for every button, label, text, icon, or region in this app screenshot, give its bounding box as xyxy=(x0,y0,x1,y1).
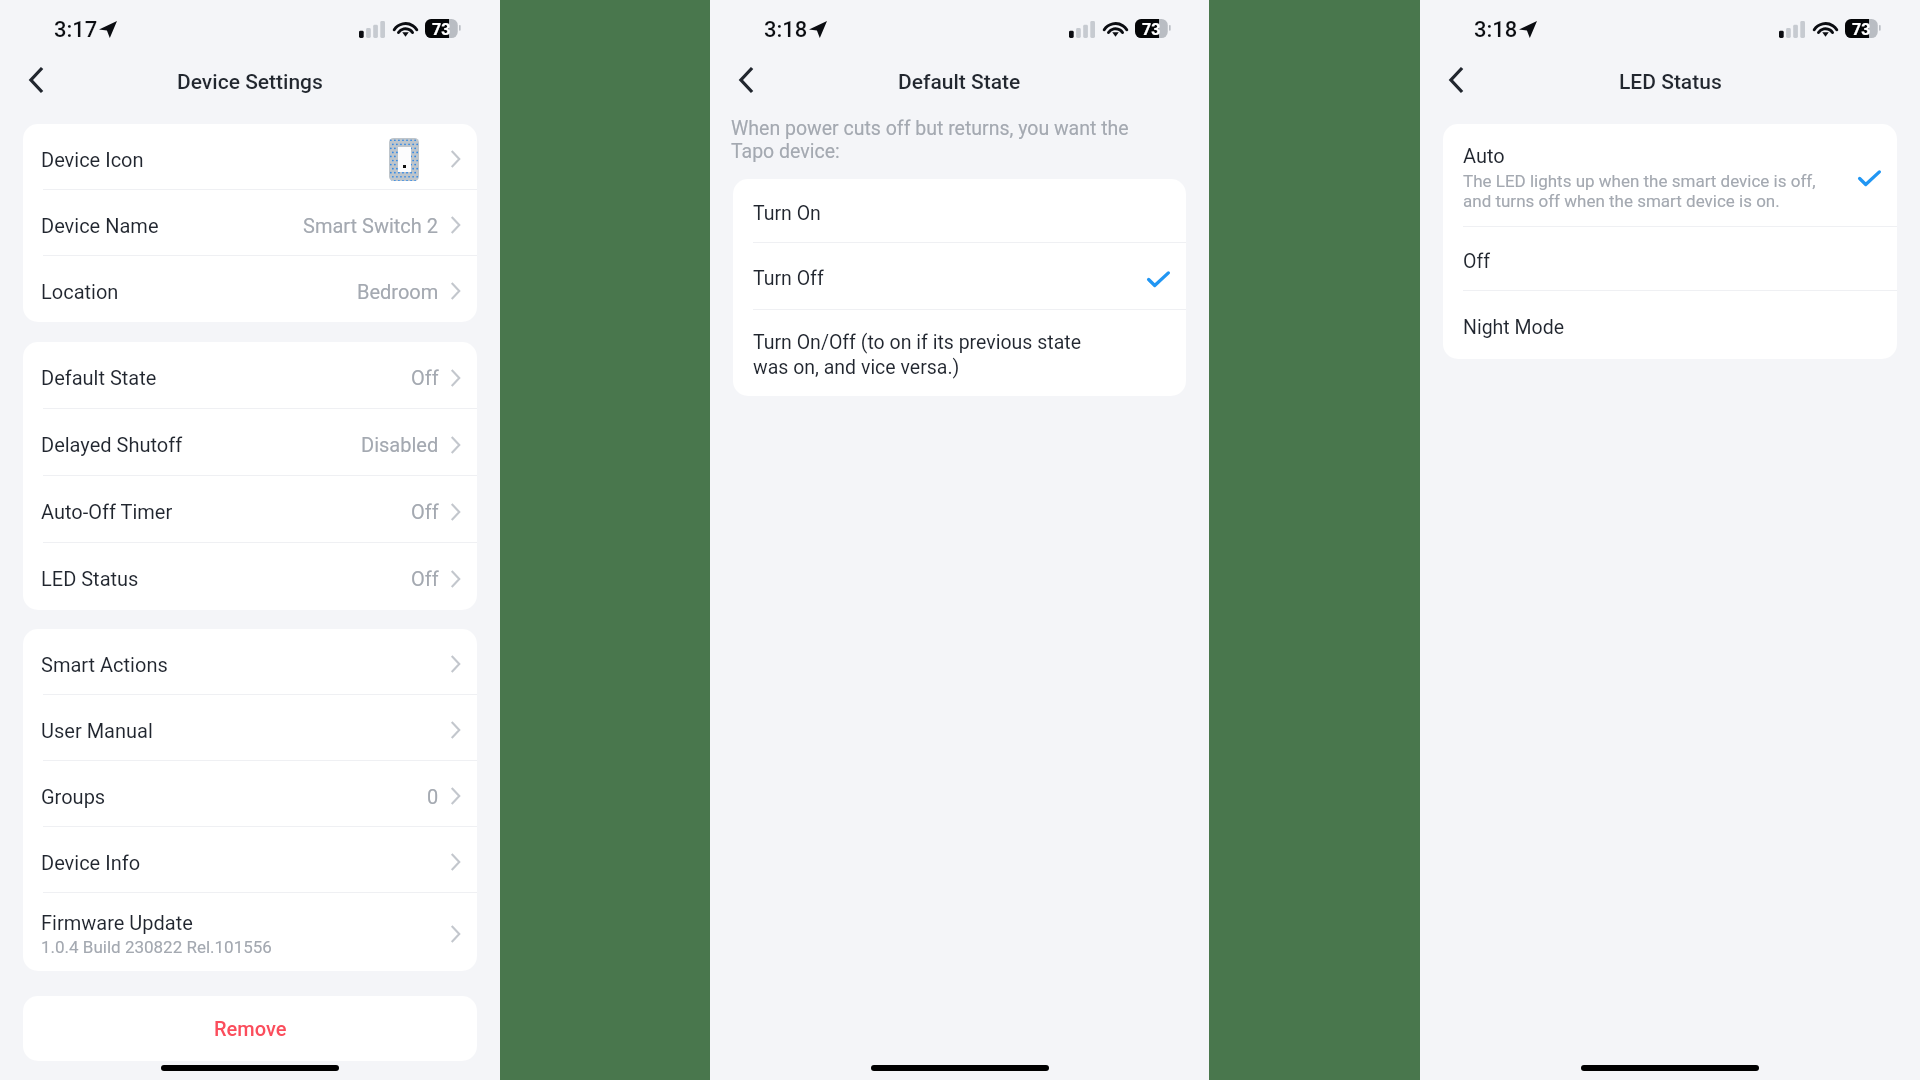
button[interactable]: Device Name xyxy=(23,190,477,256)
button[interactable]: Device Icon xyxy=(23,124,477,190)
button[interactable]: Back xyxy=(13,57,59,103)
button[interactable]: Device Info xyxy=(23,827,477,893)
button[interactable]: Auto xyxy=(1443,124,1897,227)
staticText: Disabled xyxy=(361,433,439,456)
staticText: 3:17 xyxy=(54,17,98,43)
staticText: 73 xyxy=(1852,20,1871,39)
staticText: Location xyxy=(41,280,119,303)
staticText: User Manual xyxy=(41,719,153,742)
staticText: Device Settings xyxy=(177,70,323,95)
staticText: Device Name xyxy=(41,214,159,237)
staticText: Delayed Shutoff xyxy=(41,433,183,456)
button[interactable]: Night Mode xyxy=(1443,291,1897,359)
staticText: 3:18 xyxy=(764,17,808,43)
staticText: Auto-Off Timer xyxy=(41,500,173,523)
button[interactable]: Auto-Off Timer xyxy=(23,476,477,543)
button[interactable]: Off xyxy=(1443,227,1897,291)
staticText: 0 xyxy=(427,785,439,808)
button[interactable]: Smart Actions xyxy=(23,629,477,695)
staticText: Night Mode xyxy=(1463,316,1864,339)
staticText: The LED lights up when the smart device … xyxy=(1463,171,1821,211)
staticText: Default State xyxy=(41,366,157,389)
staticText: 3:18 xyxy=(1474,17,1518,43)
staticText: Groups xyxy=(41,785,106,808)
staticText: Off xyxy=(411,366,439,389)
staticText: LED Status xyxy=(41,567,139,590)
button[interactable]: Turn On xyxy=(733,179,1186,243)
button[interactable]: Delayed Shutoff xyxy=(23,409,477,476)
staticText: Off xyxy=(411,567,439,590)
staticText: Device Icon xyxy=(41,148,144,171)
button[interactable]: Firmware Update xyxy=(23,893,477,971)
button[interactable]: Default State xyxy=(23,342,477,409)
button[interactable]: Back xyxy=(723,57,769,103)
staticText: 73 xyxy=(1142,20,1161,39)
staticText: Off xyxy=(411,500,439,523)
staticText: Turn On xyxy=(753,202,1153,225)
staticText: Turn Off xyxy=(753,267,1132,290)
button[interactable]: Turn On/Off (to on if its previous state… xyxy=(733,310,1186,396)
button[interactable]: LED Status xyxy=(23,543,477,610)
staticText: Off xyxy=(1463,250,1864,273)
staticText: 73 xyxy=(432,20,451,39)
staticText: Smart Actions xyxy=(41,653,168,676)
button[interactable]: Back xyxy=(1433,57,1479,103)
button[interactable]: Groups xyxy=(23,761,477,827)
staticText: Turn On/Off (to on if its previous state… xyxy=(753,331,1111,379)
staticText: Firmware Update xyxy=(41,911,193,934)
staticText: Device Info xyxy=(41,851,141,874)
staticText: Default State xyxy=(898,70,1021,95)
button[interactable]: User Manual xyxy=(23,695,477,761)
staticText: Bedroom xyxy=(357,280,439,303)
staticText: Smart Switch 2 xyxy=(303,214,439,237)
staticText: 1.0.4 Build 230822 Rel.101556 xyxy=(41,937,272,957)
button[interactable]: Turn Off xyxy=(733,243,1186,310)
staticText: Remove xyxy=(214,1017,287,1040)
staticText: When power cuts off but returns, you wan… xyxy=(731,117,1161,163)
button[interactable]: Location xyxy=(23,256,477,322)
button[interactable]: Remove xyxy=(23,996,477,1061)
staticText: LED Status xyxy=(1619,70,1722,95)
staticText: Auto xyxy=(1463,144,1505,167)
